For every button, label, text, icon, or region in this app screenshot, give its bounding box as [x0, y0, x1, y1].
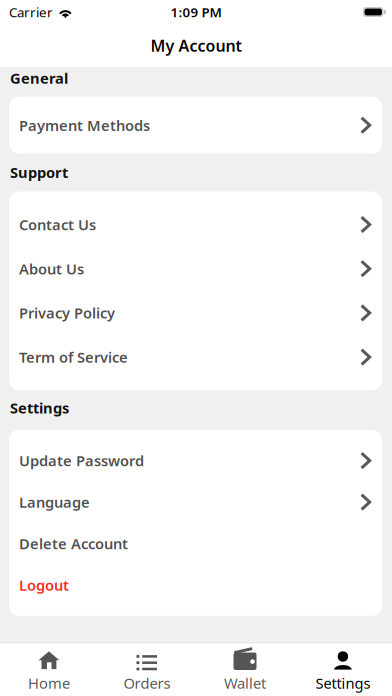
staticText: My Account — [150, 35, 241, 56]
staticText: Update Password — [19, 451, 144, 470]
staticText: Privacy Policy — [19, 303, 115, 323]
button[interactable]: Delete Account — [9, 523, 382, 564]
button[interactable]: About Us — [9, 247, 382, 291]
staticText: Settings — [315, 673, 370, 693]
button[interactable]: Term of Service — [9, 335, 382, 379]
staticText: Delete Account — [19, 534, 128, 553]
button[interactable]: Home — [0, 643, 98, 696]
staticText: About Us — [19, 259, 84, 278]
staticText: Support — [10, 163, 68, 182]
button[interactable]: Orders — [98, 643, 196, 696]
staticText: Contact Us — [19, 215, 96, 234]
staticText: Term of Service — [19, 347, 128, 367]
staticText: 1:09 PM — [170, 3, 221, 21]
staticText: General — [10, 68, 68, 88]
staticText: Logout — [19, 575, 69, 595]
staticText: Wallet — [224, 673, 266, 693]
button[interactable]: Privacy Policy — [9, 291, 382, 335]
staticText: Settings — [10, 398, 69, 418]
staticText: Orders — [123, 673, 170, 693]
staticText: Carrier — [9, 3, 53, 21]
staticText: Language — [19, 492, 90, 512]
button[interactable]: Wallet — [196, 643, 294, 696]
button[interactable]: Contact Us — [9, 202, 382, 247]
button[interactable]: Language — [9, 481, 382, 523]
button[interactable]: Settings — [294, 643, 392, 696]
staticText: Home — [28, 673, 70, 693]
staticText: Payment Methods — [19, 115, 150, 135]
button[interactable]: Update Password — [9, 440, 382, 481]
button[interactable]: Logout — [9, 564, 382, 606]
button[interactable]: Payment Methods — [9, 104, 382, 147]
